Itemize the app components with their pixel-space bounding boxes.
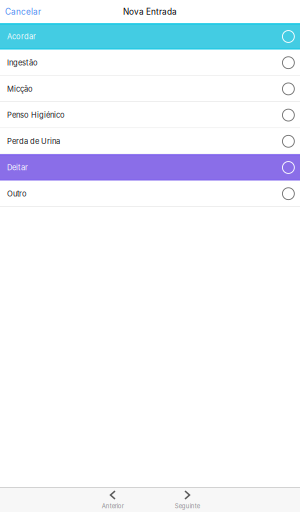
- button[interactable]: Micção: [0, 76, 300, 102]
- staticText: Outro: [7, 189, 27, 198]
- button[interactable]: Outro: [0, 181, 300, 207]
- button[interactable]: Anterior: [93, 489, 133, 510]
- staticText: Acordar: [7, 32, 36, 41]
- button[interactable]: Deitar: [0, 154, 300, 181]
- button[interactable]: Ingestão: [0, 50, 300, 76]
- staticText: Anterior: [102, 502, 124, 510]
- staticText: Nova Entrada: [123, 7, 177, 17]
- button[interactable]: Penso Higiénico: [0, 102, 300, 128]
- button[interactable]: Cancelar: [0, 3, 41, 21]
- staticText: Penso Higiénico: [7, 110, 65, 120]
- staticText: Ingestão: [7, 58, 38, 67]
- staticText: Deitar: [7, 163, 28, 172]
- button[interactable]: Seguinte: [167, 489, 207, 510]
- staticText: Cancelar: [5, 7, 41, 17]
- staticText: Micção: [7, 84, 33, 93]
- staticText: Seguinte: [175, 502, 200, 510]
- staticText: Perda de Urina: [7, 137, 60, 146]
- button[interactable]: Perda de Urina: [0, 128, 300, 154]
- button[interactable]: Acordar: [0, 23, 300, 50]
